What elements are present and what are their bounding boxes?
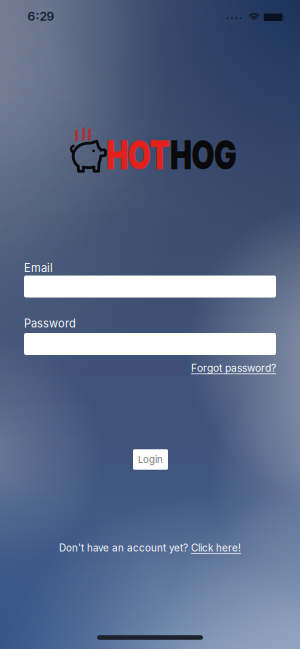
button[interactable]: Login <box>133 449 168 470</box>
button[interactable]: Don't have an account yet? Click here! <box>59 542 241 554</box>
staticText: Login <box>138 454 163 465</box>
button[interactable]: Forgot password? <box>191 362 276 374</box>
staticText: 6:29 <box>27 9 54 24</box>
staticText: Password <box>24 317 76 330</box>
staticText: Don't have an account yet? Click here! <box>59 542 241 554</box>
staticText: HOT <box>87 132 169 179</box>
staticText: HOG <box>169 132 255 179</box>
staticText: Email <box>24 261 53 275</box>
staticText: Forgot password? <box>191 362 276 374</box>
